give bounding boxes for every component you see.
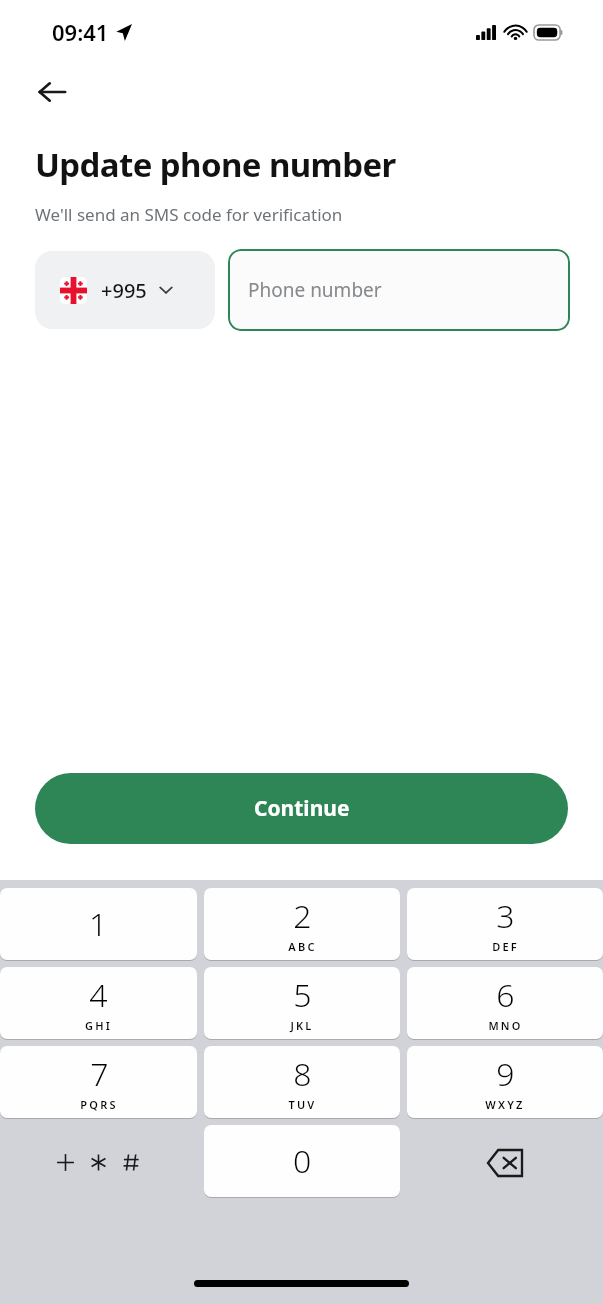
button[interactable]: Continue (35, 773, 568, 844)
staticText: DEF (492, 939, 519, 954)
button[interactable]: 3 (407, 888, 603, 960)
staticText: 1 (89, 902, 108, 946)
staticText: Update phone number (35, 142, 396, 187)
button[interactable]: Phone number (228, 249, 570, 331)
staticText: Continue (254, 794, 350, 823)
button[interactable]: Symbols plus star hash (0, 1123, 197, 1202)
staticText: 7 (90, 1052, 109, 1096)
staticText: 0 (293, 1139, 312, 1183)
staticText: +995 (101, 277, 147, 304)
staticText: 9 (496, 1052, 515, 1096)
staticText: 5 (293, 973, 312, 1017)
staticText: WXYZ (485, 1097, 525, 1112)
staticText: TUV (288, 1097, 317, 1112)
staticText: 3 (496, 894, 515, 938)
staticText: 09:41 (52, 17, 109, 47)
button[interactable]: Backspace (407, 1123, 603, 1202)
button[interactable]: +995 (35, 251, 215, 329)
button[interactable]: 6 (407, 967, 603, 1039)
button[interactable]: 2 (204, 888, 400, 960)
staticText: ABC (288, 939, 317, 954)
button[interactable]: 5 (204, 967, 400, 1039)
staticText: PQRS (80, 1097, 118, 1112)
button[interactable]: 1 (0, 888, 197, 960)
staticText: 8 (293, 1052, 312, 1096)
button[interactable]: 0 (204, 1125, 400, 1197)
staticText: GHI (85, 1018, 112, 1033)
staticText: Phone number (248, 277, 382, 303)
button[interactable]: Back (24, 64, 80, 120)
staticText: 6 (496, 973, 515, 1017)
staticText: 2 (293, 894, 312, 938)
button[interactable]: 7 (0, 1046, 197, 1118)
staticText: 4 (89, 973, 108, 1017)
staticText: We'll send an SMS code for verification (35, 203, 343, 226)
staticText: JKL (290, 1018, 314, 1033)
button[interactable]: 4 (0, 967, 197, 1039)
staticText: MNO (488, 1018, 523, 1033)
button[interactable]: 9 (407, 1046, 603, 1118)
button[interactable]: 8 (204, 1046, 400, 1118)
